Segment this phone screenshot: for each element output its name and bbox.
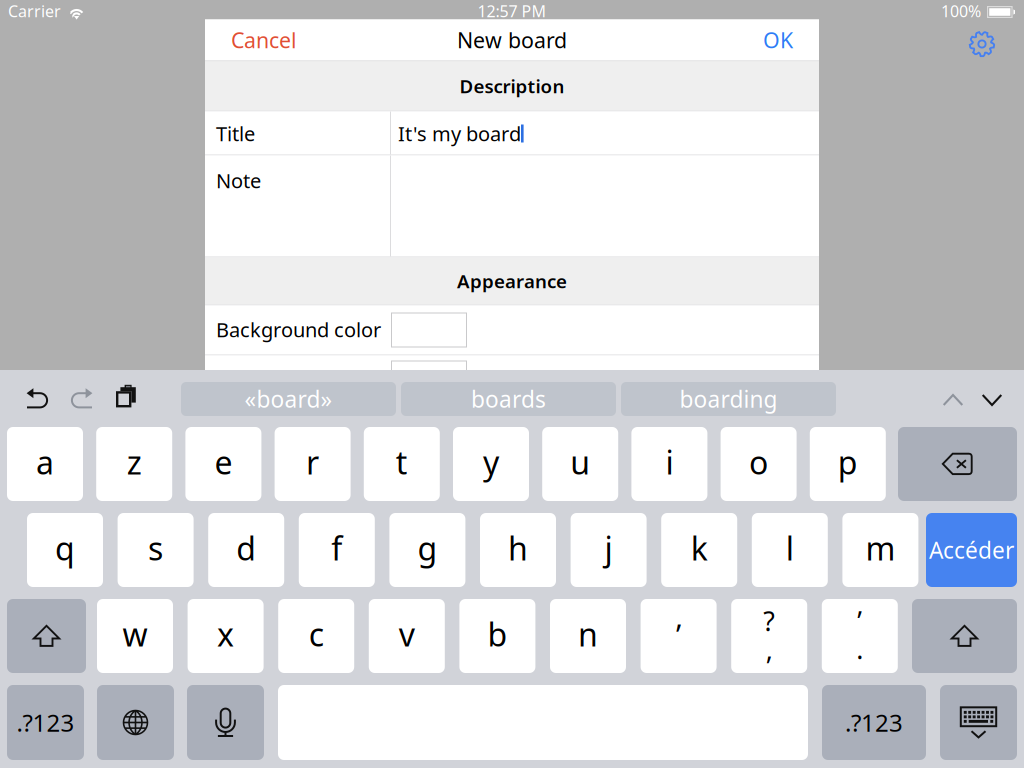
button[interactable]: b (459, 599, 535, 673)
staticText: .?123 (16, 707, 74, 738)
staticText: Carrier (8, 0, 61, 22)
button[interactable]: m (842, 513, 918, 587)
button[interactable]: y (453, 427, 529, 501)
staticText: Appearance (457, 269, 567, 293)
staticText: p (838, 441, 858, 483)
button[interactable]: v (369, 599, 445, 673)
button[interactable]: Next field (980, 391, 1004, 409)
button[interactable]: boards (401, 382, 616, 416)
staticText: l (786, 527, 794, 569)
button[interactable]: ’ (822, 599, 898, 673)
staticText: e (214, 441, 232, 483)
staticText: a (36, 441, 54, 483)
staticText: It's my board (398, 120, 521, 147)
button[interactable]: a (7, 427, 83, 501)
button[interactable]: l (752, 513, 828, 587)
button[interactable]: Paste (116, 384, 137, 408)
staticText: New board (457, 26, 567, 54)
staticText: .?123 (845, 707, 903, 738)
button[interactable]: g (389, 513, 465, 587)
staticText: «board» (244, 384, 332, 414)
button[interactable]: boarding (621, 382, 836, 416)
button[interactable]: .?123 (822, 685, 926, 760)
button[interactable]: Cancel (218, 19, 310, 61)
button[interactable]: p (810, 427, 886, 501)
staticText: z (127, 441, 142, 483)
button[interactable]: Previous field (941, 391, 965, 409)
staticText: , (766, 631, 773, 667)
staticText: Background color (216, 316, 381, 343)
button[interactable]: Settings (968, 30, 995, 57)
staticText: g (417, 527, 437, 569)
button[interactable]: w (97, 599, 173, 673)
staticText: n (578, 613, 598, 655)
button[interactable]: q (27, 513, 103, 587)
button[interactable]: Undo (24, 385, 50, 411)
button[interactable]: Redo (69, 385, 95, 411)
staticText: Accéder (929, 535, 1014, 565)
button[interactable]: Shift (7, 599, 86, 673)
button[interactable]: Dictation (187, 685, 264, 760)
button[interactable]: Accéder (926, 513, 1017, 587)
button[interactable]: Next keyboard (97, 685, 174, 760)
button[interactable]: Hide keyboard (940, 685, 1017, 760)
button[interactable]: Shift (912, 599, 1017, 673)
staticText: b (487, 613, 507, 655)
button[interactable]: n (550, 599, 626, 673)
staticText: boards (471, 384, 546, 414)
button[interactable]: d (208, 513, 284, 587)
staticText: f (331, 527, 342, 569)
button[interactable]: f (299, 513, 375, 587)
staticText: c (309, 613, 324, 655)
staticText: boarding (679, 384, 777, 414)
staticText: v (399, 613, 415, 655)
button[interactable]: Delete (898, 427, 1017, 501)
button[interactable]: i (631, 427, 707, 501)
button[interactable]: «board» (181, 382, 396, 416)
staticText: q (55, 527, 75, 569)
staticText: r (306, 441, 319, 483)
staticText: x (217, 613, 234, 655)
button[interactable]: r (275, 427, 351, 501)
staticText: d (236, 527, 256, 569)
button[interactable]: z (96, 427, 172, 501)
staticText: Cancel (231, 26, 297, 54)
button[interactable]: .?123 (7, 685, 84, 760)
button[interactable]: ? (731, 599, 807, 673)
staticText: ’ (676, 614, 681, 653)
button[interactable]: c (278, 599, 354, 673)
button[interactable]: u (542, 427, 618, 501)
button[interactable]: ’ (641, 599, 717, 673)
staticText: k (691, 527, 708, 569)
button[interactable]: s (118, 513, 194, 587)
staticText: i (665, 441, 673, 483)
button[interactable]: t (364, 427, 440, 501)
staticText: OK (763, 26, 793, 54)
button[interactable]: o (721, 427, 797, 501)
button[interactable]: j (571, 513, 647, 587)
button[interactable]: e (185, 427, 261, 501)
staticText: Title (216, 120, 255, 147)
staticText: j (605, 527, 613, 569)
staticText: u (570, 441, 590, 483)
staticText: s (148, 527, 163, 569)
staticText: Note (216, 167, 261, 194)
button[interactable]: OK (750, 19, 806, 61)
staticText: y (483, 441, 499, 483)
staticText: . (856, 631, 863, 667)
button[interactable]: h (480, 513, 556, 587)
staticText: 12:57 PM (477, 0, 546, 22)
staticText: h (508, 527, 528, 569)
staticText: ? (763, 603, 775, 639)
staticText: m (865, 527, 895, 569)
staticText: t (396, 441, 408, 483)
staticText: w (122, 613, 147, 655)
staticText: 100% (941, 0, 981, 22)
button[interactable]: x (188, 599, 264, 673)
staticText: ’ (857, 603, 862, 639)
staticText: o (749, 441, 768, 483)
button[interactable]: k (661, 513, 737, 587)
staticText: Description (459, 74, 564, 98)
